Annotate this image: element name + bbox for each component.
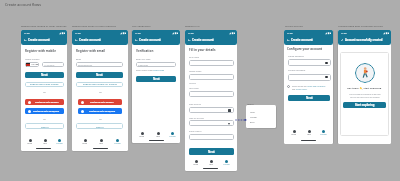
button[interactable]: Account	[222, 160, 230, 167]
staticText: 11:00	[75, 32, 81, 35]
button[interactable]	[288, 74, 331, 81]
button[interactable]: Account	[168, 132, 176, 139]
staticText: Menu	[247, 102, 254, 105]
button[interactable]: Continue with facebook	[78, 108, 122, 114]
button[interactable]: ←	[132, 38, 180, 44]
staticText: Register with email	[76, 49, 106, 53]
staticText: Secure account	[285, 24, 303, 27]
staticText: Register with mobile	[25, 49, 57, 53]
button[interactable]: Account	[113, 139, 121, 146]
staticText: Help	[99, 142, 103, 144]
staticText: Continue with google	[35, 101, 59, 104]
staticText: Help	[307, 133, 311, 135]
staticText: Help	[209, 163, 213, 165]
button[interactable]	[189, 107, 234, 113]
staticText: Home	[139, 135, 145, 137]
button[interactable]: Help	[97, 139, 105, 146]
button[interactable]	[189, 120, 234, 126]
staticText: 11:00	[24, 32, 30, 35]
staticText: Account	[114, 142, 121, 144]
button[interactable]: Account	[319, 130, 327, 137]
button[interactable]: ←	[185, 38, 237, 44]
staticText: Middle name	[189, 70, 202, 73]
button[interactable]: +1 234 5678	[42, 62, 64, 67]
button[interactable]: Account	[55, 139, 63, 146]
button[interactable]: Register with mobile no. instead	[76, 82, 123, 87]
staticText: Last name	[189, 87, 199, 90]
button[interactable]: Trucker	[250, 116, 258, 119]
button[interactable]	[288, 59, 331, 66]
staticText: Register with mobile no. instead	[83, 83, 117, 86]
staticText: Help	[43, 142, 47, 144]
button[interactable]: ←	[21, 38, 67, 44]
staticText: ←	[75, 38, 78, 41]
staticText: +1 234 5678	[44, 64, 55, 66]
button[interactable]: Help	[154, 132, 162, 139]
staticText: You can follow on procedure to get your	[349, 93, 381, 95]
button[interactable]: Next	[136, 76, 176, 82]
button[interactable]: Continue with google	[78, 99, 122, 105]
button[interactable]	[189, 134, 234, 140]
button[interactable]	[287, 85, 290, 88]
button[interactable]: Next	[25, 72, 64, 78]
button[interactable]: Help	[305, 130, 313, 137]
staticText: Continue with facebook	[33, 110, 60, 113]
staticText: Next	[153, 77, 160, 81]
staticText: Didn't receive code? Resend code	[136, 69, 165, 71]
button[interactable]: Next	[288, 95, 330, 101]
button[interactable]: Continue with facebook	[25, 108, 64, 114]
button[interactable]: Help	[207, 160, 215, 167]
staticText: Create account flows	[5, 2, 42, 7]
staticText: Create password	[288, 55, 304, 58]
button[interactable]: john@gmail.com	[76, 62, 123, 67]
button[interactable]: Next	[189, 148, 234, 155]
staticText: First name	[189, 56, 199, 59]
button[interactable]: 4 digit code	[136, 62, 176, 67]
button[interactable]	[189, 91, 234, 97]
staticText: OR	[43, 118, 46, 121]
button[interactable]: Start exploring	[343, 102, 386, 108]
button[interactable]: Continue with google	[25, 99, 64, 105]
button[interactable]	[189, 60, 234, 66]
button[interactable]: ←	[72, 38, 128, 44]
staticText: Register with email or other methods	[72, 24, 116, 27]
staticText: 11:00	[135, 32, 141, 35]
staticText: +254	[31, 63, 36, 66]
button[interactable]: Sign in	[76, 123, 123, 129]
staticText: Place of birth	[189, 130, 202, 133]
staticText: Mobile number	[25, 58, 40, 61]
button[interactable]: Home	[290, 130, 298, 137]
staticText: 11:00	[341, 32, 347, 35]
staticText: Create account	[139, 38, 161, 42]
staticText: Fill in your details	[189, 48, 216, 52]
staticText: Help	[156, 135, 160, 137]
staticText: Please accept our Terms and conditions	[292, 85, 326, 87]
staticText: Register KYC	[185, 24, 200, 27]
button[interactable]: Register with email instead	[25, 82, 64, 87]
staticText: ←	[135, 38, 138, 41]
staticText: john@gmail.com	[78, 64, 93, 66]
button[interactable]: +254	[25, 62, 39, 67]
button[interactable]: ✓	[338, 38, 391, 44]
button[interactable]: Home	[26, 139, 34, 146]
staticText: Email	[76, 58, 82, 61]
button[interactable]: Help	[41, 139, 49, 146]
staticText: Enter OTP code	[136, 58, 151, 61]
staticText: Next	[41, 73, 48, 77]
button[interactable]: Home	[138, 132, 146, 139]
staticText: OR	[43, 91, 46, 94]
button[interactable]: Boat	[250, 121, 255, 124]
staticText: 11:00	[188, 32, 194, 35]
button[interactable]: Tutor	[250, 111, 256, 114]
staticText: and Privacy policy	[292, 88, 308, 90]
staticText: Create account	[79, 38, 101, 42]
button[interactable]: Sign in	[25, 123, 64, 129]
staticText: Continue with google	[90, 101, 114, 104]
staticText: Account	[169, 135, 176, 137]
button[interactable]: Home	[81, 139, 89, 146]
staticText: Next	[96, 73, 103, 77]
button[interactable]: ←	[284, 38, 333, 44]
button[interactable]: Home	[192, 160, 200, 167]
button[interactable]	[189, 74, 234, 80]
button[interactable]: Next	[76, 72, 123, 78]
